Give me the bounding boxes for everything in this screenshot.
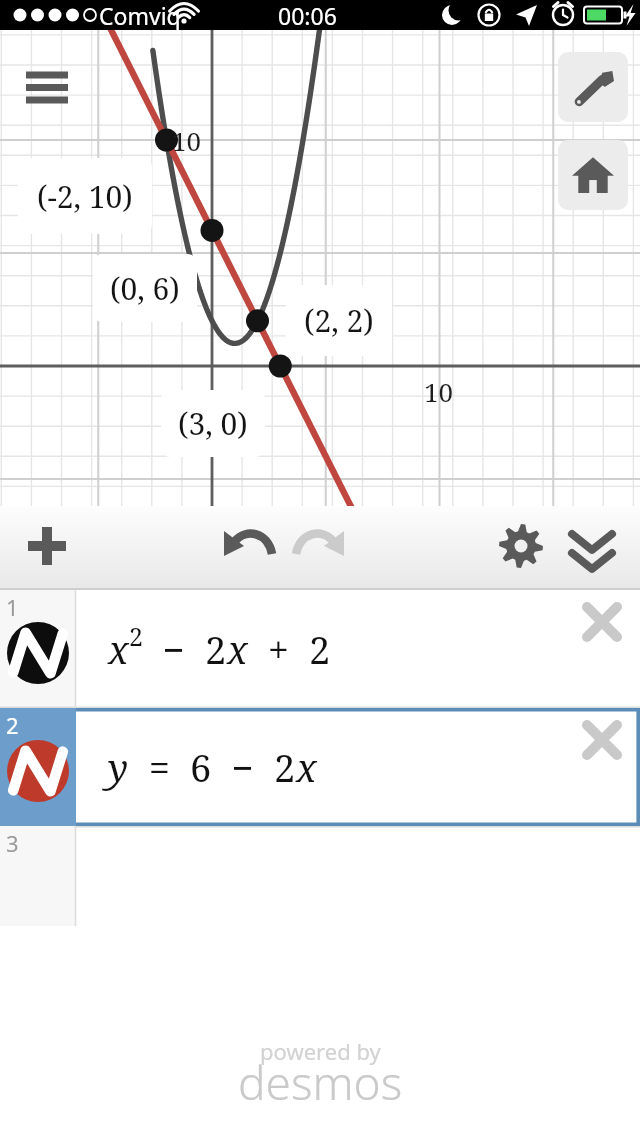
staticText: (-2, 10) — [37, 176, 133, 217]
staticText: 1 — [6, 592, 19, 622]
staticText: 2 — [274, 741, 296, 793]
staticText: 10 — [424, 374, 454, 409]
staticText: (2, 2) — [304, 300, 374, 341]
button[interactable]: Home — [558, 140, 628, 210]
staticText: 3 — [6, 828, 19, 858]
staticText: 2 — [129, 619, 143, 653]
staticText: = — [129, 741, 190, 793]
button[interactable]: 1 — [0, 590, 640, 708]
button[interactable]: 2 — [0, 708, 640, 826]
staticText: Comviq — [99, 0, 181, 30]
button[interactable]: Delete expression 1 — [576, 596, 628, 648]
button[interactable]: (2, 2) — [286, 285, 392, 356]
staticText: y — [108, 741, 129, 793]
staticText: (0, 6) — [110, 268, 180, 309]
staticText: 6 — [190, 741, 212, 793]
button[interactable]: Menu — [16, 56, 78, 118]
staticText: 2 — [205, 623, 227, 675]
button[interactable]: 3 — [0, 826, 640, 926]
button[interactable]: (0, 6) — [93, 254, 197, 322]
staticText: + — [248, 623, 309, 675]
staticText: 00:06 — [278, 0, 337, 30]
button[interactable]: (-2, 10) — [18, 158, 152, 234]
button[interactable]: (3, 0) — [161, 390, 265, 457]
button[interactable]: Settings — [558, 52, 628, 122]
staticText: x — [108, 623, 129, 675]
staticText: 10 — [172, 123, 202, 158]
staticText: − — [212, 741, 274, 793]
staticText: 2 — [309, 623, 331, 675]
staticText: powered by — [260, 1036, 381, 1066]
staticText: x — [296, 741, 317, 793]
staticText: (3, 0) — [178, 403, 248, 444]
staticText: desmos — [238, 1051, 403, 1114]
staticText: − — [143, 623, 205, 675]
staticText: x — [227, 623, 248, 675]
staticText: 2 — [6, 710, 19, 740]
button[interactable]: Delete expression 2 — [576, 714, 628, 766]
